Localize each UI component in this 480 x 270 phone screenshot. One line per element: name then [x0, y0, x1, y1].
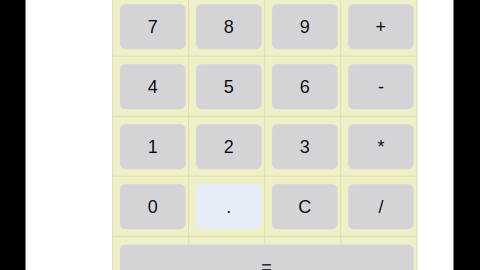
button[interactable]: 3 [272, 124, 338, 169]
button[interactable]: 7 [120, 4, 185, 49]
button[interactable]: 9 [272, 4, 338, 49]
staticText: 7 [148, 17, 158, 37]
button[interactable]: 5 [196, 64, 262, 109]
button[interactable]: 8 [196, 4, 262, 49]
staticText: C [298, 197, 311, 217]
button[interactable]: 1 [120, 124, 185, 169]
staticText: 3 [300, 137, 310, 157]
staticText: 2 [224, 137, 234, 157]
button[interactable]: / [348, 184, 414, 229]
button[interactable]: 2 [196, 124, 262, 169]
staticText: * [377, 137, 384, 157]
staticText: 8 [224, 17, 234, 37]
staticText: . [226, 197, 231, 217]
button[interactable]: 4 [120, 64, 185, 109]
staticText: 6 [300, 77, 310, 97]
button[interactable]: C [272, 184, 338, 229]
staticText: / [378, 197, 383, 217]
staticText: - [378, 77, 384, 97]
button[interactable]: - [348, 64, 414, 109]
button[interactable]: . [196, 184, 262, 229]
button[interactable]: 0 [120, 184, 185, 229]
button[interactable]: * [348, 124, 414, 169]
button[interactable]: + [348, 4, 414, 49]
button[interactable]: = [120, 245, 414, 270]
button[interactable]: 6 [272, 64, 338, 109]
staticText: + [375, 17, 386, 37]
staticText: 9 [300, 17, 310, 37]
staticText: 1 [148, 137, 158, 157]
staticText: = [261, 257, 272, 270]
staticText: 5 [224, 77, 234, 97]
staticText: 0 [148, 197, 158, 217]
staticText: 4 [148, 77, 158, 97]
